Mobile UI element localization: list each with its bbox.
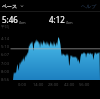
- staticText: 8:00: [1, 69, 9, 74]
- staticText: 4:12: [49, 14, 65, 25]
- staticText: 5:46: [2, 14, 18, 25]
- button[interactable]: ヘルプ: [81, 3, 97, 9]
- staticText: 平均: [1, 24, 9, 29]
- staticText: 6:07: [1, 52, 9, 57]
- staticText: 14:00: [33, 82, 44, 87]
- staticText: /km: [66, 20, 73, 25]
- staticText: 5:10: [1, 44, 9, 49]
- staticText: 0:00: [18, 82, 26, 87]
- button[interactable]: ペース: [2, 3, 24, 9]
- staticText: 56:00: [79, 82, 90, 87]
- staticText: 8:56: [1, 77, 9, 82]
- staticText: 4:14: [1, 36, 9, 41]
- staticText: 28:00: [48, 82, 59, 87]
- staticText: ペース: [2, 3, 18, 9]
- staticText: /km: [19, 20, 26, 25]
- staticText: ヘルプ: [81, 3, 97, 9]
- staticText: 42:00: [64, 82, 75, 87]
- staticText: 7:03: [1, 61, 9, 66]
